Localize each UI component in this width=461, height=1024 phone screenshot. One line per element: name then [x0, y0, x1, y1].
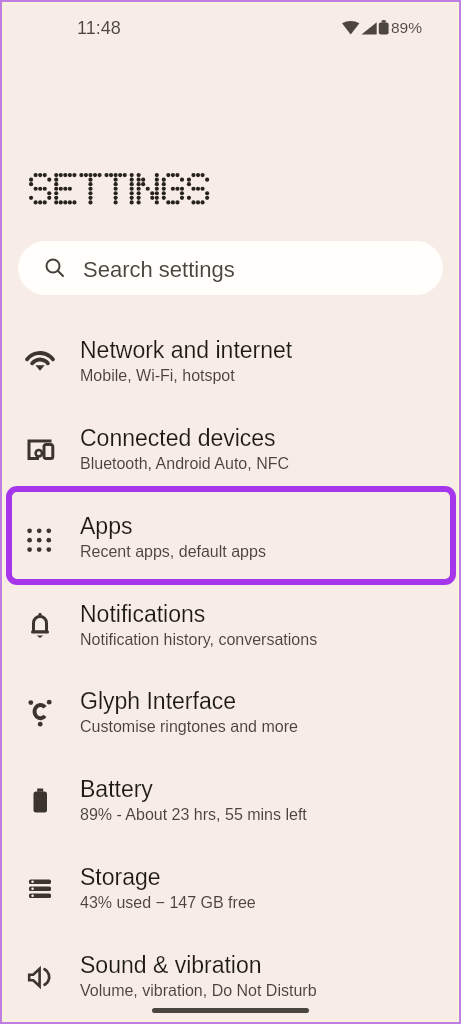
staticText: 89% — [391, 19, 423, 36]
staticText: Notifications — [80, 601, 206, 627]
staticText: Battery — [80, 776, 153, 802]
staticText: Connected devices — [80, 425, 276, 451]
staticText: Volume, vibration, Do Not Disturb — [80, 982, 317, 1000]
staticText: Sound & vibration — [80, 952, 262, 978]
staticText: Recent apps, default apps — [80, 543, 266, 561]
staticText: Apps — [80, 513, 133, 539]
staticText: Search settings — [83, 257, 235, 282]
staticText: Mobile, Wi-Fi, hotspot — [80, 367, 235, 385]
staticText: 43% used − 147 GB free — [80, 894, 256, 912]
staticText: Customise ringtones and more — [80, 718, 298, 736]
staticText: Network and internet — [80, 337, 293, 363]
staticText: Storage — [80, 864, 161, 890]
staticText: 89% - About 23 hrs, 55 mins left — [80, 806, 307, 824]
staticText: Glyph Interface — [80, 688, 236, 714]
staticText: Notification history, conversations — [80, 631, 318, 649]
staticText: Bluetooth, Android Auto, NFC — [80, 455, 290, 473]
staticText: 11:48 — [77, 18, 121, 38]
